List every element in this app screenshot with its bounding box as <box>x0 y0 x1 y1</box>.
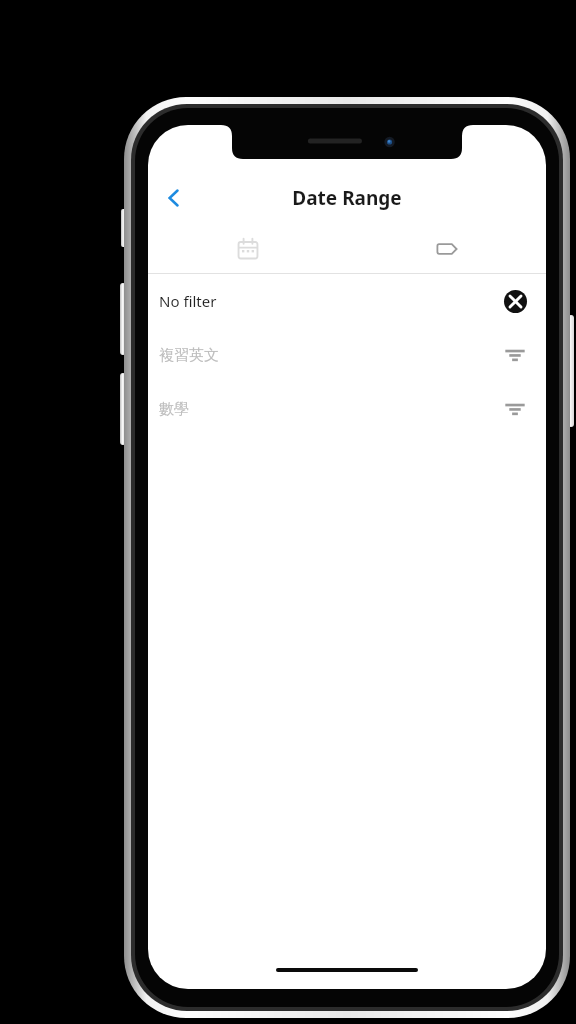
button[interactable]: Filter 複習英文 <box>498 338 532 372</box>
staticText: 複習英文 <box>159 346 498 365</box>
staticText: No filter <box>159 291 498 311</box>
button[interactable]: Filter 數學 <box>498 392 532 426</box>
button[interactable]: No filter <box>148 274 546 328</box>
staticText: 數學 <box>159 400 498 419</box>
button[interactable]: Date filter <box>148 225 347 273</box>
button[interactable]: 複習英文 <box>148 328 546 382</box>
staticText: Date Range <box>292 185 402 211</box>
button[interactable]: Tag filter <box>347 225 546 273</box>
button[interactable]: Back <box>150 174 198 222</box>
button[interactable]: Clear filter <box>498 284 532 318</box>
button[interactable]: 數學 <box>148 382 546 436</box>
